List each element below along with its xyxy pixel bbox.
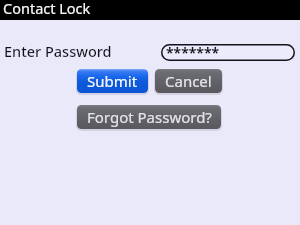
button[interactable]: Forgot Password? xyxy=(77,105,221,129)
button[interactable]: Submit xyxy=(77,69,148,93)
staticText: Enter Password xyxy=(4,41,112,61)
staticText: Cancel xyxy=(165,71,212,91)
staticText: Forgot Password? xyxy=(87,107,212,127)
button[interactable]: Cancel xyxy=(155,69,222,93)
staticText: Contact Lock xyxy=(3,0,91,18)
staticText: ******* xyxy=(166,43,220,60)
staticText: Submit xyxy=(87,71,138,91)
button[interactable]: ******* xyxy=(161,44,295,61)
